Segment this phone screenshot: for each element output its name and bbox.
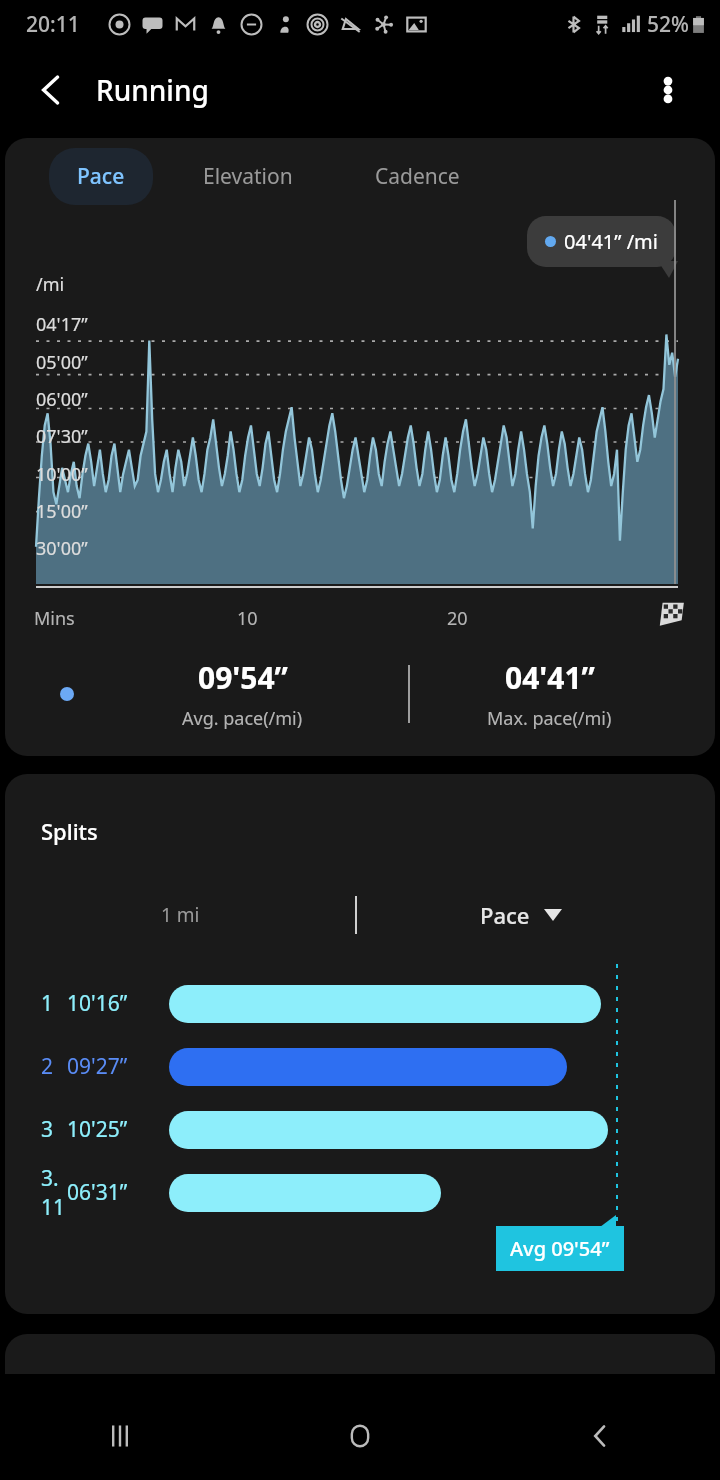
staticText: 04'41” /mi <box>564 228 658 255</box>
staticText: 52% <box>647 10 689 39</box>
staticText: 07'30” <box>36 424 88 449</box>
button[interactable]: Back <box>24 62 80 118</box>
staticText: 3.11 <box>41 1164 67 1222</box>
staticText: Avg 09'54” <box>510 1235 610 1262</box>
staticText: Pace <box>480 900 530 930</box>
button[interactable]: Elevation <box>175 148 321 205</box>
staticText: 04'17” <box>36 312 88 337</box>
staticText: 20:11 <box>26 10 80 39</box>
staticText: 04'41” <box>505 657 595 698</box>
staticText: Mins <box>34 606 75 631</box>
staticText: 10'25” <box>67 1115 128 1144</box>
staticText: Pace <box>77 162 125 191</box>
staticText: 09'27” <box>67 1052 128 1081</box>
staticText: 1 mi <box>161 902 200 928</box>
staticText: 2 <box>41 1052 54 1081</box>
button[interactable]: Back <box>480 1392 720 1480</box>
button[interactable]: 3.11 <box>5 1161 715 1224</box>
staticText: 10'16” <box>67 989 128 1018</box>
staticText: Cadence <box>375 162 460 191</box>
staticText: 3 <box>41 1115 54 1144</box>
button[interactable]: 1 <box>5 972 715 1035</box>
staticText: 09'54” <box>198 657 288 698</box>
staticText: 20 <box>447 606 468 631</box>
button[interactable]: Pace <box>49 148 153 205</box>
staticText: Avg. pace(/mi) <box>182 706 303 731</box>
staticText: 10 <box>237 606 258 631</box>
staticText: 06'00” <box>36 387 88 412</box>
button[interactable]: 2 <box>5 1035 715 1098</box>
staticText: 05'00” <box>36 350 88 375</box>
button[interactable]: 3 <box>5 1098 715 1161</box>
staticText: 10'00” <box>36 462 88 487</box>
staticText: 15'00” <box>36 499 88 524</box>
button[interactable]: Pace <box>470 894 572 936</box>
button[interactable]: Recents <box>0 1392 240 1480</box>
staticText: 30'00” <box>36 536 88 561</box>
staticText: /mi <box>36 272 65 297</box>
staticText: Max. pace(/mi) <box>487 706 612 731</box>
staticText: Splits <box>41 816 98 846</box>
button[interactable]: More options <box>640 62 696 118</box>
staticText: Elevation <box>203 162 293 191</box>
staticText: Running <box>96 71 209 109</box>
staticText: 06'31” <box>67 1178 128 1207</box>
staticText: 1 <box>41 989 54 1018</box>
button[interactable]: Home <box>240 1392 480 1480</box>
button[interactable]: Cadence <box>347 148 488 205</box>
